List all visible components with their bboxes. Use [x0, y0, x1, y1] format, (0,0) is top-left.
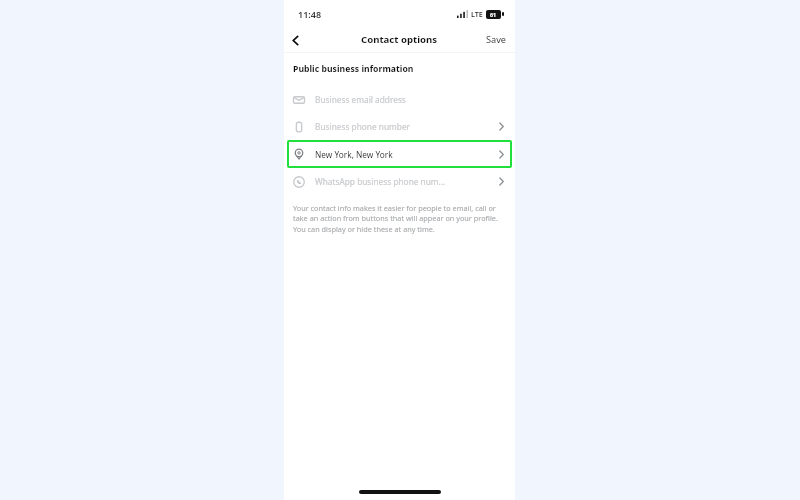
staticText: 61 [490, 11, 497, 18]
staticText: Save [486, 33, 507, 46]
button[interactable]: Business phone number [284, 113, 515, 140]
staticText: New York, New York [315, 149, 499, 160]
staticText: Public business information [293, 63, 414, 75]
button[interactable]: Business email address [284, 86, 515, 113]
button[interactable]: New York, New York [287, 140, 512, 168]
staticText: Your contact info makes it easier for pe… [293, 203, 507, 235]
button[interactable]: Save [478, 29, 515, 50]
staticText: Contact options [361, 33, 438, 46]
staticText: LTE [471, 9, 483, 19]
staticText: WhatsApp business phone num... [315, 176, 499, 187]
staticText: Business phone number [315, 121, 499, 132]
staticText: Business email address [315, 94, 504, 105]
staticText: 11:48 [298, 8, 322, 20]
button[interactable]: WhatsApp business phone num... [284, 168, 515, 195]
button[interactable]: Back [284, 29, 306, 51]
